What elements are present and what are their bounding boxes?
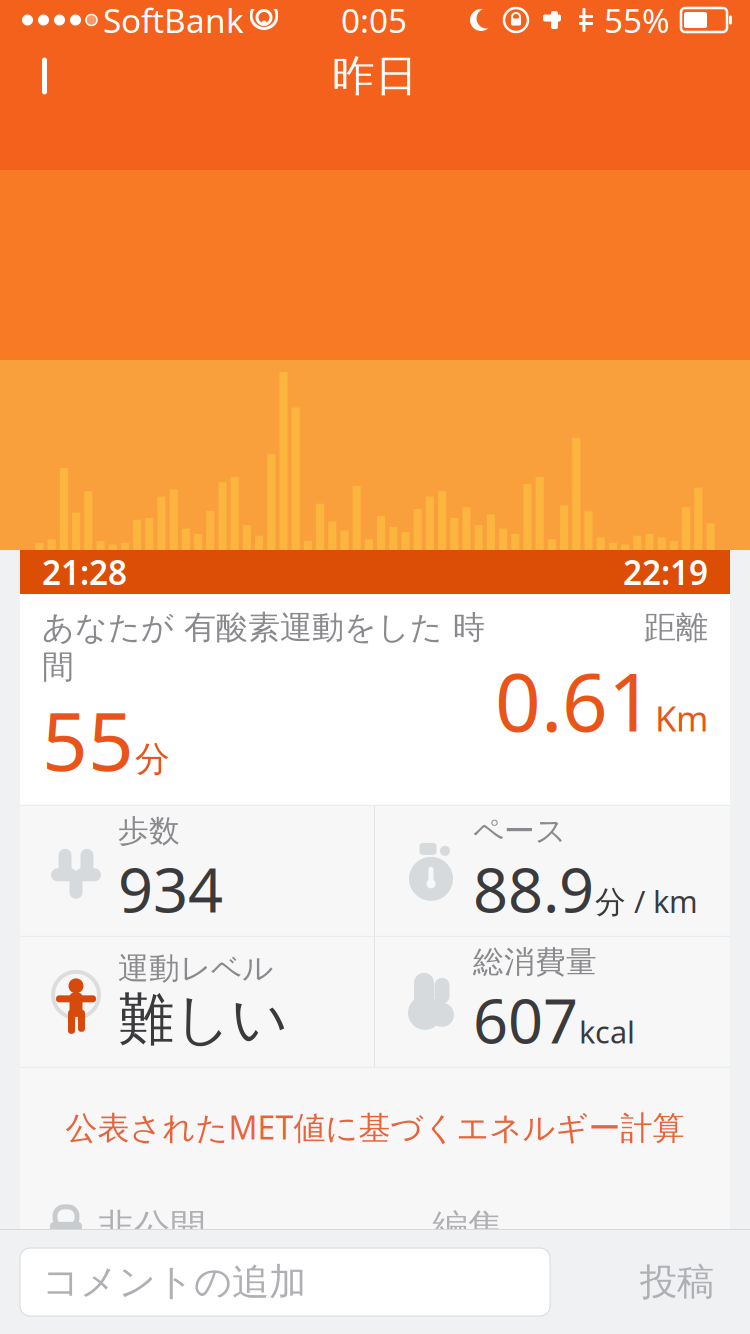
staticText: 編集 <box>432 1205 504 1249</box>
staticText: 昨日 <box>332 50 418 102</box>
button[interactable]: 非公開 <box>48 1194 206 1260</box>
staticText: 非公開 <box>98 1205 206 1249</box>
staticText: 分 / km <box>595 881 698 921</box>
staticText: kcal <box>579 1011 635 1052</box>
staticText: 88.9 <box>473 848 594 929</box>
staticText: あなたが 有酸素運動をした 時間 <box>42 608 485 687</box>
button[interactable]: コメントの追加 <box>20 1248 550 1316</box>
staticText: 歩数 <box>118 812 180 850</box>
button[interactable]: スタンプ <box>34 1303 76 1334</box>
staticText: 距離 <box>644 608 708 647</box>
staticText: 投稿 <box>640 1259 714 1305</box>
button[interactable]: 戻る <box>14 42 82 110</box>
staticText: 公表されたMET値に基づくエネルギー計算 <box>65 1106 684 1148</box>
staticText: 運動レベル <box>118 950 273 987</box>
button[interactable]: 公表されたMET値に基づくエネルギー計算 <box>20 1092 730 1162</box>
button[interactable]: スタンプ <box>86 1303 130 1334</box>
staticText: 難しい <box>118 985 288 1054</box>
staticText: 55% <box>604 0 670 42</box>
button[interactable]: 投稿 <box>618 1248 736 1316</box>
staticText: 分 <box>135 738 170 780</box>
staticText: 21:28 <box>42 550 127 594</box>
staticText: SoftBank <box>103 0 244 42</box>
staticText: 934 <box>118 848 223 929</box>
button[interactable]: 編集 <box>402 1195 534 1259</box>
staticText: 607 <box>473 979 578 1060</box>
staticText: Km <box>655 695 708 741</box>
staticText: 22:19 <box>623 550 708 594</box>
staticText: 総消費量 <box>473 943 597 981</box>
staticText: ペース <box>473 812 566 850</box>
staticText: 55 <box>42 687 134 793</box>
staticText: コメントの追加 <box>42 1259 306 1305</box>
staticText: 0:05 <box>341 0 407 42</box>
staticText: 0.61 <box>495 647 654 753</box>
